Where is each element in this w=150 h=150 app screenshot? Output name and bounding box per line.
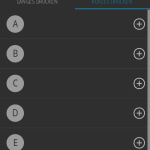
button[interactable]: D [0,99,150,128]
button[interactable]: A [0,10,150,39]
staticText: KURZES DRÜCKEN [92,0,133,5]
staticText: E [13,137,17,148]
staticText: A [13,19,18,29]
staticText: D [12,108,18,119]
staticText: C [13,78,18,89]
button[interactable]: KURZES DRÜCKEN [75,0,150,10]
button[interactable]: E [0,128,150,150]
button[interactable]: C [0,69,150,99]
staticText: B [13,48,18,59]
button[interactable]: B [0,39,150,69]
button[interactable]: LANGES DRÜCKEN [0,0,75,10]
staticText: LANGES DRÜCKEN [17,0,58,5]
